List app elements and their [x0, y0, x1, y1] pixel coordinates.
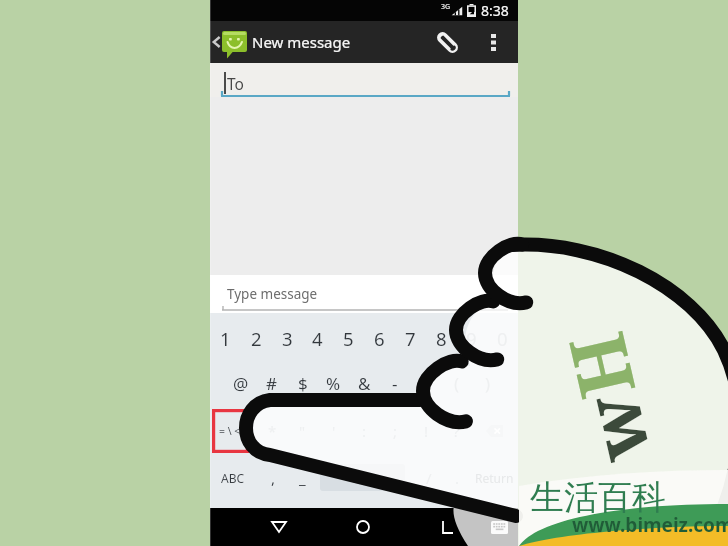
- staticText: 3: [282, 326, 293, 351]
- button[interactable]: /: [413, 454, 444, 502]
- staticText: 2: [251, 326, 262, 351]
- button[interactable]: 4: [302, 314, 333, 362]
- button[interactable]: ,: [258, 454, 289, 502]
- button[interactable]: 7: [395, 314, 426, 362]
- button[interactable]: Space: [320, 454, 405, 502]
- button[interactable]: = \ <: [212, 407, 248, 455]
- staticText: Type message: [227, 285, 318, 303]
- staticText: 0: [497, 326, 508, 351]
- button[interactable]: #: [256, 359, 287, 407]
- button[interactable]: 5: [333, 314, 364, 362]
- staticText: !: [424, 421, 429, 441]
- staticText: 1: [220, 326, 231, 351]
- button[interactable]: Type message: [210, 275, 518, 313]
- button[interactable]: *: [257, 407, 288, 455]
- button[interactable]: To: [210, 63, 518, 97]
- staticText: Return: [475, 470, 514, 486]
- staticText: -: [392, 372, 398, 395]
- staticText: 8: [436, 326, 447, 351]
- staticText: %: [326, 372, 341, 395]
- staticText: 8:38: [481, 1, 509, 20]
- staticText: ?: [453, 421, 460, 441]
- button[interactable]: 2: [241, 314, 272, 362]
- staticText: To: [227, 73, 244, 94]
- staticText: 5: [343, 326, 354, 351]
- button[interactable]: 3: [272, 314, 303, 362]
- button[interactable]: 6: [364, 314, 395, 362]
- button[interactable]: ?: [441, 407, 472, 455]
- button[interactable]: Home: [343, 508, 383, 546]
- staticText: ,: [271, 468, 276, 488]
- button[interactable]: ABC: [213, 454, 253, 502]
- button[interactable]: _: [287, 454, 318, 502]
- staticText: (: [454, 372, 460, 395]
- button[interactable]: Back: [259, 508, 299, 546]
- button[interactable]: -: [379, 359, 410, 407]
- button[interactable]: (: [441, 359, 472, 407]
- button[interactable]: Recents: [427, 508, 467, 546]
- staticText: New message: [252, 32, 351, 52]
- button[interactable]: Hide keyboard: [484, 508, 514, 546]
- staticText: ABC: [221, 470, 245, 486]
- button[interactable]: %: [318, 359, 349, 407]
- button[interactable]: Attach: [424, 21, 470, 63]
- button[interactable]: Return: [471, 454, 517, 502]
- staticText: H: [543, 323, 658, 408]
- staticText: 6: [374, 326, 385, 351]
- staticText: 9: [466, 326, 477, 351]
- button[interactable]: ): [472, 359, 503, 407]
- staticText: /: [426, 468, 432, 488]
- button[interactable]: Back: [210, 21, 251, 63]
- button[interactable]: .: [442, 454, 473, 502]
- staticText: #: [266, 372, 277, 395]
- button[interactable]: 1: [210, 314, 241, 362]
- staticText: 4: [312, 326, 323, 351]
- button[interactable]: 9: [456, 314, 487, 362]
- staticText: 7: [405, 326, 416, 351]
- staticText: &: [358, 372, 371, 395]
- button[interactable]: !: [411, 407, 442, 455]
- staticText: w: [557, 384, 673, 472]
- button[interactable]: 0: [487, 314, 518, 362]
- staticText: www.bimeiz.com: [572, 512, 728, 538]
- staticText: 3G: [441, 2, 451, 12]
- button[interactable]: &: [349, 359, 380, 407]
- button[interactable]: 8: [426, 314, 457, 362]
- button[interactable]: More options: [479, 21, 507, 63]
- staticText: +: [421, 372, 431, 395]
- staticText: 生活百科: [530, 476, 666, 519]
- staticText: ): [485, 372, 491, 395]
- button[interactable]: [212, 409, 249, 453]
- staticText: $: [298, 372, 308, 395]
- button[interactable]: ": [287, 407, 318, 455]
- staticText: = \ <: [219, 424, 241, 438]
- staticText: @: [233, 372, 249, 395]
- button[interactable]: @: [225, 359, 256, 407]
- button[interactable]: +: [410, 359, 441, 407]
- staticText: _: [299, 468, 306, 488]
- button[interactable]: $: [287, 359, 318, 407]
